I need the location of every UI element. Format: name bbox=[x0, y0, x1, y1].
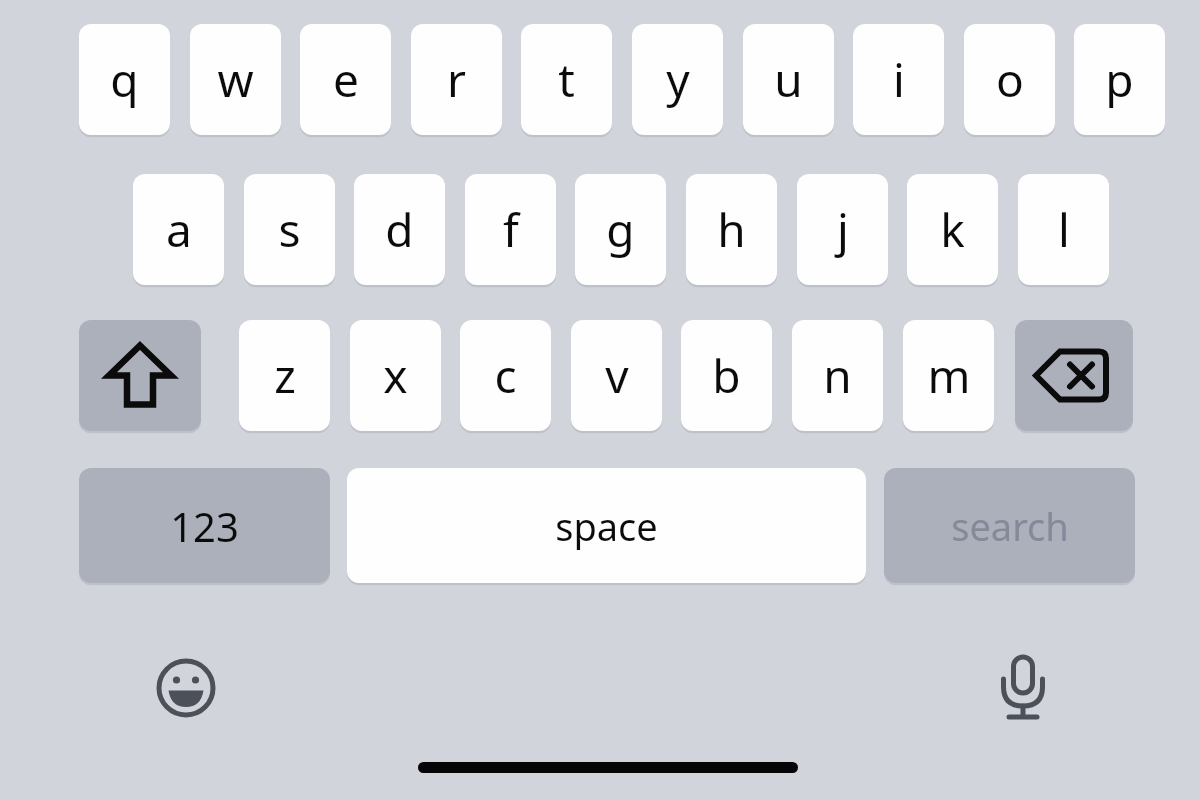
staticText: c bbox=[494, 344, 517, 407]
staticText: i bbox=[893, 48, 905, 111]
staticText: f bbox=[503, 198, 519, 261]
staticText: search bbox=[951, 500, 1069, 552]
button[interactable]: h bbox=[686, 174, 777, 285]
button[interactable]: t bbox=[521, 24, 612, 135]
staticText: o bbox=[996, 48, 1024, 111]
staticText: z bbox=[274, 344, 296, 407]
staticText: t bbox=[558, 48, 575, 111]
staticText: space bbox=[555, 500, 658, 552]
button[interactable]: q bbox=[79, 24, 170, 135]
staticText: j bbox=[837, 198, 849, 261]
staticText: q bbox=[110, 48, 139, 111]
staticText: x bbox=[383, 344, 408, 407]
button[interactable]: l bbox=[1018, 174, 1109, 285]
staticText: p bbox=[1105, 48, 1134, 111]
button[interactable]: b bbox=[681, 320, 772, 431]
button[interactable]: f bbox=[465, 174, 556, 285]
staticText: u bbox=[774, 48, 803, 111]
staticText: e bbox=[333, 48, 359, 111]
button[interactable]: search bbox=[884, 468, 1135, 583]
button[interactable]: g bbox=[575, 174, 666, 285]
button[interactable]: p bbox=[1074, 24, 1165, 135]
button[interactable]: v bbox=[571, 320, 662, 431]
staticText: y bbox=[666, 48, 690, 111]
button[interactable]: s bbox=[244, 174, 335, 285]
button[interactable]: d bbox=[354, 174, 445, 285]
button[interactable]: u bbox=[743, 24, 834, 135]
staticText: 123 bbox=[170, 499, 239, 553]
button[interactable]: c bbox=[460, 320, 551, 431]
staticText: m bbox=[927, 344, 971, 407]
button[interactable]: y bbox=[632, 24, 723, 135]
staticText: h bbox=[717, 198, 746, 261]
button[interactable]: o bbox=[964, 24, 1055, 135]
button[interactable]: r bbox=[411, 24, 502, 135]
staticText: s bbox=[278, 198, 301, 261]
button[interactable]: Backspace bbox=[1015, 320, 1133, 431]
button[interactable]: Shift bbox=[79, 320, 201, 431]
staticText: g bbox=[606, 198, 635, 261]
button[interactable]: 123 bbox=[79, 468, 330, 583]
staticText: n bbox=[823, 344, 852, 407]
button[interactable]: i bbox=[853, 24, 944, 135]
button[interactable]: Emoji bbox=[136, 638, 236, 738]
staticText: w bbox=[217, 48, 254, 111]
button[interactable]: k bbox=[907, 174, 998, 285]
staticText: l bbox=[1058, 198, 1070, 261]
button[interactable]: z bbox=[239, 320, 330, 431]
staticText: v bbox=[605, 344, 629, 407]
button[interactable]: Dictation bbox=[973, 638, 1073, 738]
button[interactable]: w bbox=[190, 24, 281, 135]
button[interactable]: e bbox=[300, 24, 391, 135]
staticText: b bbox=[712, 344, 741, 407]
button[interactable]: a bbox=[133, 174, 224, 285]
staticText: d bbox=[385, 198, 414, 261]
button[interactable]: n bbox=[792, 320, 883, 431]
button[interactable]: j bbox=[797, 174, 888, 285]
staticText: k bbox=[940, 198, 965, 261]
button[interactable]: x bbox=[350, 320, 441, 431]
staticText: a bbox=[166, 198, 192, 261]
staticText: r bbox=[447, 48, 466, 111]
button[interactable]: m bbox=[903, 320, 994, 431]
button[interactable]: space bbox=[347, 468, 866, 583]
